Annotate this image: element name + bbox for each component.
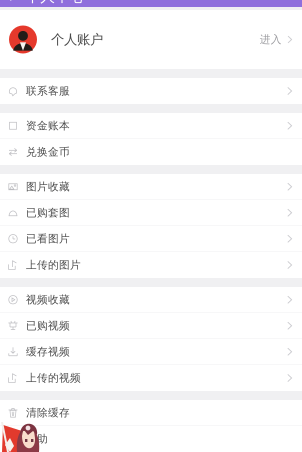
staticText: 资金账本: [26, 119, 70, 132]
button[interactable]: 资金账本: [0, 113, 302, 139]
staticText: 进入: [260, 33, 282, 46]
staticText: 联系客服: [26, 84, 70, 97]
button[interactable]: 已购视频: [0, 313, 302, 339]
staticText: 已购视频: [26, 319, 70, 332]
button[interactable]: 已购套图: [0, 200, 302, 226]
staticText: 图片收藏: [26, 180, 70, 193]
staticText: 兑换金币: [26, 145, 70, 158]
button[interactable]: 帮助: [0, 426, 302, 452]
button[interactable]: 个人账户: [0, 10, 302, 69]
button[interactable]: 返回: [0, 0, 25, 4]
staticText: 缓存视频: [26, 345, 70, 358]
staticText: 清除缓存: [26, 406, 70, 419]
staticText: 视频收藏: [26, 293, 70, 306]
staticText: 帮助: [26, 432, 48, 445]
button[interactable]: 图片收藏: [0, 174, 302, 200]
button[interactable]: 已看图片: [0, 226, 302, 252]
staticText: 上传的图片: [26, 258, 81, 271]
button[interactable]: 联系客服: [0, 78, 302, 104]
button[interactable]: 视频收藏: [0, 287, 302, 313]
staticText: 已看图片: [26, 232, 70, 245]
button[interactable]: 清除缓存: [0, 400, 302, 426]
button[interactable]: 缓存视频: [0, 339, 302, 365]
button[interactable]: 上传的视频: [0, 365, 302, 391]
staticText: 上传的视频: [26, 371, 81, 384]
staticText: 个人账户: [51, 31, 103, 48]
staticText: 已购套图: [26, 206, 70, 219]
button[interactable]: 兑换金币: [0, 139, 302, 165]
staticText: 个人中心: [25, 0, 85, 5]
button[interactable]: 上传的图片: [0, 252, 302, 278]
